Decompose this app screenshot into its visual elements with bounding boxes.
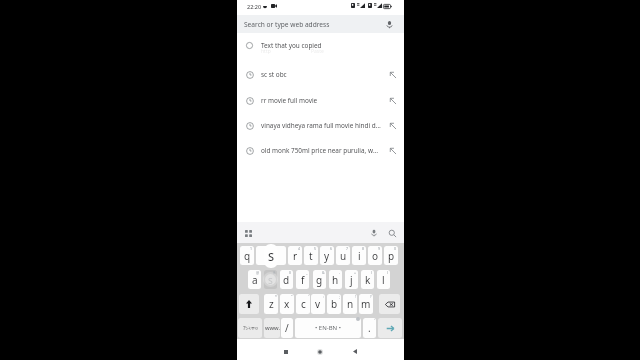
button[interactable]: q [240,246,254,265]
staticText: sc st obc [261,70,381,79]
staticText: / [285,321,289,335]
staticText: b [331,297,338,311]
button[interactable]: r [288,246,302,265]
staticText: S [268,249,275,264]
staticText: @ [256,270,260,275]
button[interactable]: Keyboard menu [242,227,254,239]
staticText: 22:20 [247,3,262,10]
button[interactable]: f [296,270,309,289]
staticText: o [372,249,379,263]
staticText: vinaya vidheya rama full movie hindi d… [261,121,381,130]
staticText: m [361,297,371,311]
staticText: $ [289,270,292,275]
staticText: Paste [311,48,324,55]
staticText: + [354,270,357,275]
staticText: p [388,249,395,263]
button[interactable]: rr movie full movie [237,88,404,112]
button[interactable]: www. [264,318,280,338]
staticText: Text that you copied [261,41,381,50]
staticText: 7 [346,246,349,251]
staticText: ! [355,294,356,299]
button[interactable]: d [280,270,293,289]
staticText: 5 [314,246,317,251]
button[interactable] [378,318,402,338]
staticText: : [323,294,324,299]
staticText: ; [339,294,340,299]
button[interactable]: o [368,246,382,265]
staticText: x [284,297,290,311]
staticText: • EN-BN • [315,324,341,332]
button[interactable]: l [377,270,390,289]
staticText: f [301,273,305,287]
staticText: 0 [394,246,397,251]
staticText: _ [306,270,308,275]
staticText: k [365,273,371,287]
button[interactable]: Back [350,347,359,356]
button[interactable] [239,294,259,314]
button[interactable]: • EN-BN • [295,318,361,338]
button[interactable]: ?১২কও [238,318,262,338]
staticText: t [309,249,313,263]
button[interactable]: s [264,270,277,289]
staticText: i [358,249,361,263]
staticText: - [339,270,341,275]
staticText: n [347,297,354,311]
staticText: l [382,273,385,287]
button[interactable]: vinaya vidheya rama full movie hindi d… [237,113,404,137]
staticText: ' [308,294,309,299]
button[interactable]: a [248,270,261,289]
staticText: z [269,297,274,311]
staticText: ? [370,294,372,299]
staticText: d [283,273,290,287]
button[interactable]: v [311,294,325,314]
button[interactable]: x [280,294,294,314]
staticText: g [316,273,323,287]
button[interactable]: . [363,318,376,338]
button[interactable]: n [343,294,357,314]
button[interactable]: Search [386,227,398,239]
staticText: 1 [250,246,253,251]
button[interactable]: k [361,270,374,289]
button[interactable]: / [281,318,293,338]
staticText: s [268,273,273,287]
staticText: ?১২কও [243,324,258,332]
button[interactable] [379,294,400,314]
staticText: u [340,249,347,263]
staticText: * [275,294,277,299]
button[interactable]: Home [315,347,324,356]
staticText: r [293,249,298,263]
button[interactable]: j [345,270,358,289]
staticText: " [291,294,293,299]
button[interactable]: t [304,246,318,265]
staticText: 4 [298,246,301,251]
button[interactable]: u [336,246,350,265]
staticText: ' [374,318,375,323]
button[interactable]: g [313,270,326,289]
staticText: . [368,321,371,335]
button[interactable]: m [359,294,373,314]
staticText: j [350,273,353,287]
button[interactable]: z [264,294,278,314]
staticText: ( [371,270,373,275]
staticText: 6 [330,246,333,251]
staticText: q [244,249,251,263]
button[interactable]: h [329,270,342,289]
staticText: # [273,270,276,275]
button[interactable]: Voice input [368,227,380,239]
button[interactable]: Recents [281,347,290,356]
button[interactable]: p [384,246,398,265]
staticText: www. [265,324,280,332]
button[interactable]: b [327,294,341,314]
staticText: Search or type web address [244,20,330,29]
staticText: http [261,48,271,55]
button[interactable]: y [320,246,334,265]
button[interactable]: Voice search [384,19,395,30]
button[interactable]: c [296,294,310,314]
button[interactable]: sc st obc [237,62,404,86]
staticText: 8 [362,246,365,251]
button[interactable]: Search or type web address [237,15,404,33]
staticText: h [332,273,339,287]
button[interactable]: Text that you copied [237,34,404,57]
button[interactable]: old monk 750ml price near purulia, we… [237,138,404,162]
button[interactable]: i [352,246,366,265]
